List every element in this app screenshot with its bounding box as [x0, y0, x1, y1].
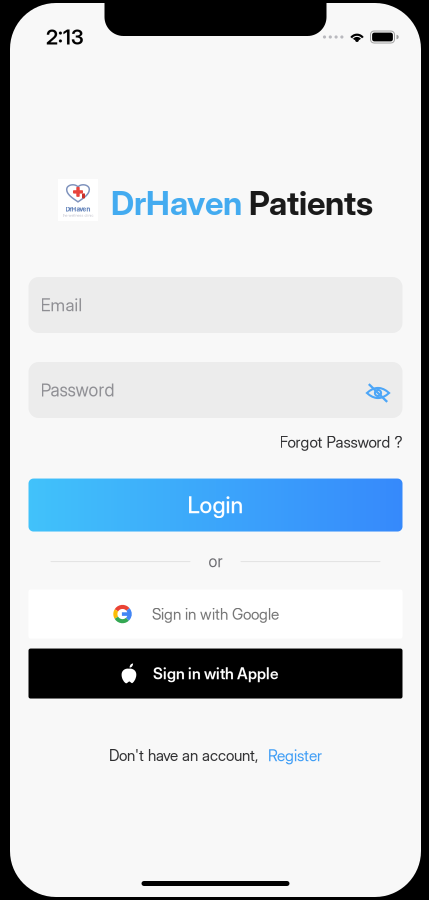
staticText: or [208, 552, 222, 571]
staticText: DrHaven [65, 205, 90, 213]
staticText: Forgot Password ? [279, 433, 402, 452]
staticText: DrHaven [111, 183, 242, 223]
staticText: Patients [242, 183, 373, 223]
button[interactable]: Forgot Password ? [279, 428, 402, 457]
staticText: Login [187, 491, 243, 519]
button[interactable]: Login [28, 479, 402, 532]
button[interactable]: Show password [361, 373, 390, 406]
staticText: 2:13 [46, 25, 84, 49]
staticText: Register [268, 746, 322, 765]
staticText: Email [40, 294, 82, 315]
button[interactable]: Register [268, 746, 322, 765]
button[interactable]: Sign in with Google [28, 590, 402, 639]
staticText: Password [40, 379, 114, 401]
staticText: Sign in with Apple [153, 664, 278, 683]
staticText: Sign in with Google [152, 605, 279, 623]
staticText: Don't have an account, [109, 746, 258, 765]
staticText: the wellness clinic [62, 213, 93, 218]
button[interactable]: Sign in with Apple [28, 649, 402, 699]
